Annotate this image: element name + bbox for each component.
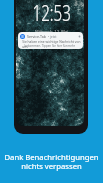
staticText: Dank Benachrichtigungen nichts verpassen — [0, 152, 103, 171]
staticText: Mittwoch, 12. Mai — [35, 29, 69, 34]
button[interactable]: Service-Tab — [18, 32, 83, 49]
staticText: Sie haben eine wichtige Nachricht von un… — [22, 39, 83, 49]
staticText: 12:53 — [33, 0, 71, 28]
staticText: Service-Tab — [27, 34, 46, 39]
staticText: • jetzt — [48, 35, 57, 39]
staticText: bekommen. Tippen Sie hier für mehr Infos… — [24, 43, 80, 49]
